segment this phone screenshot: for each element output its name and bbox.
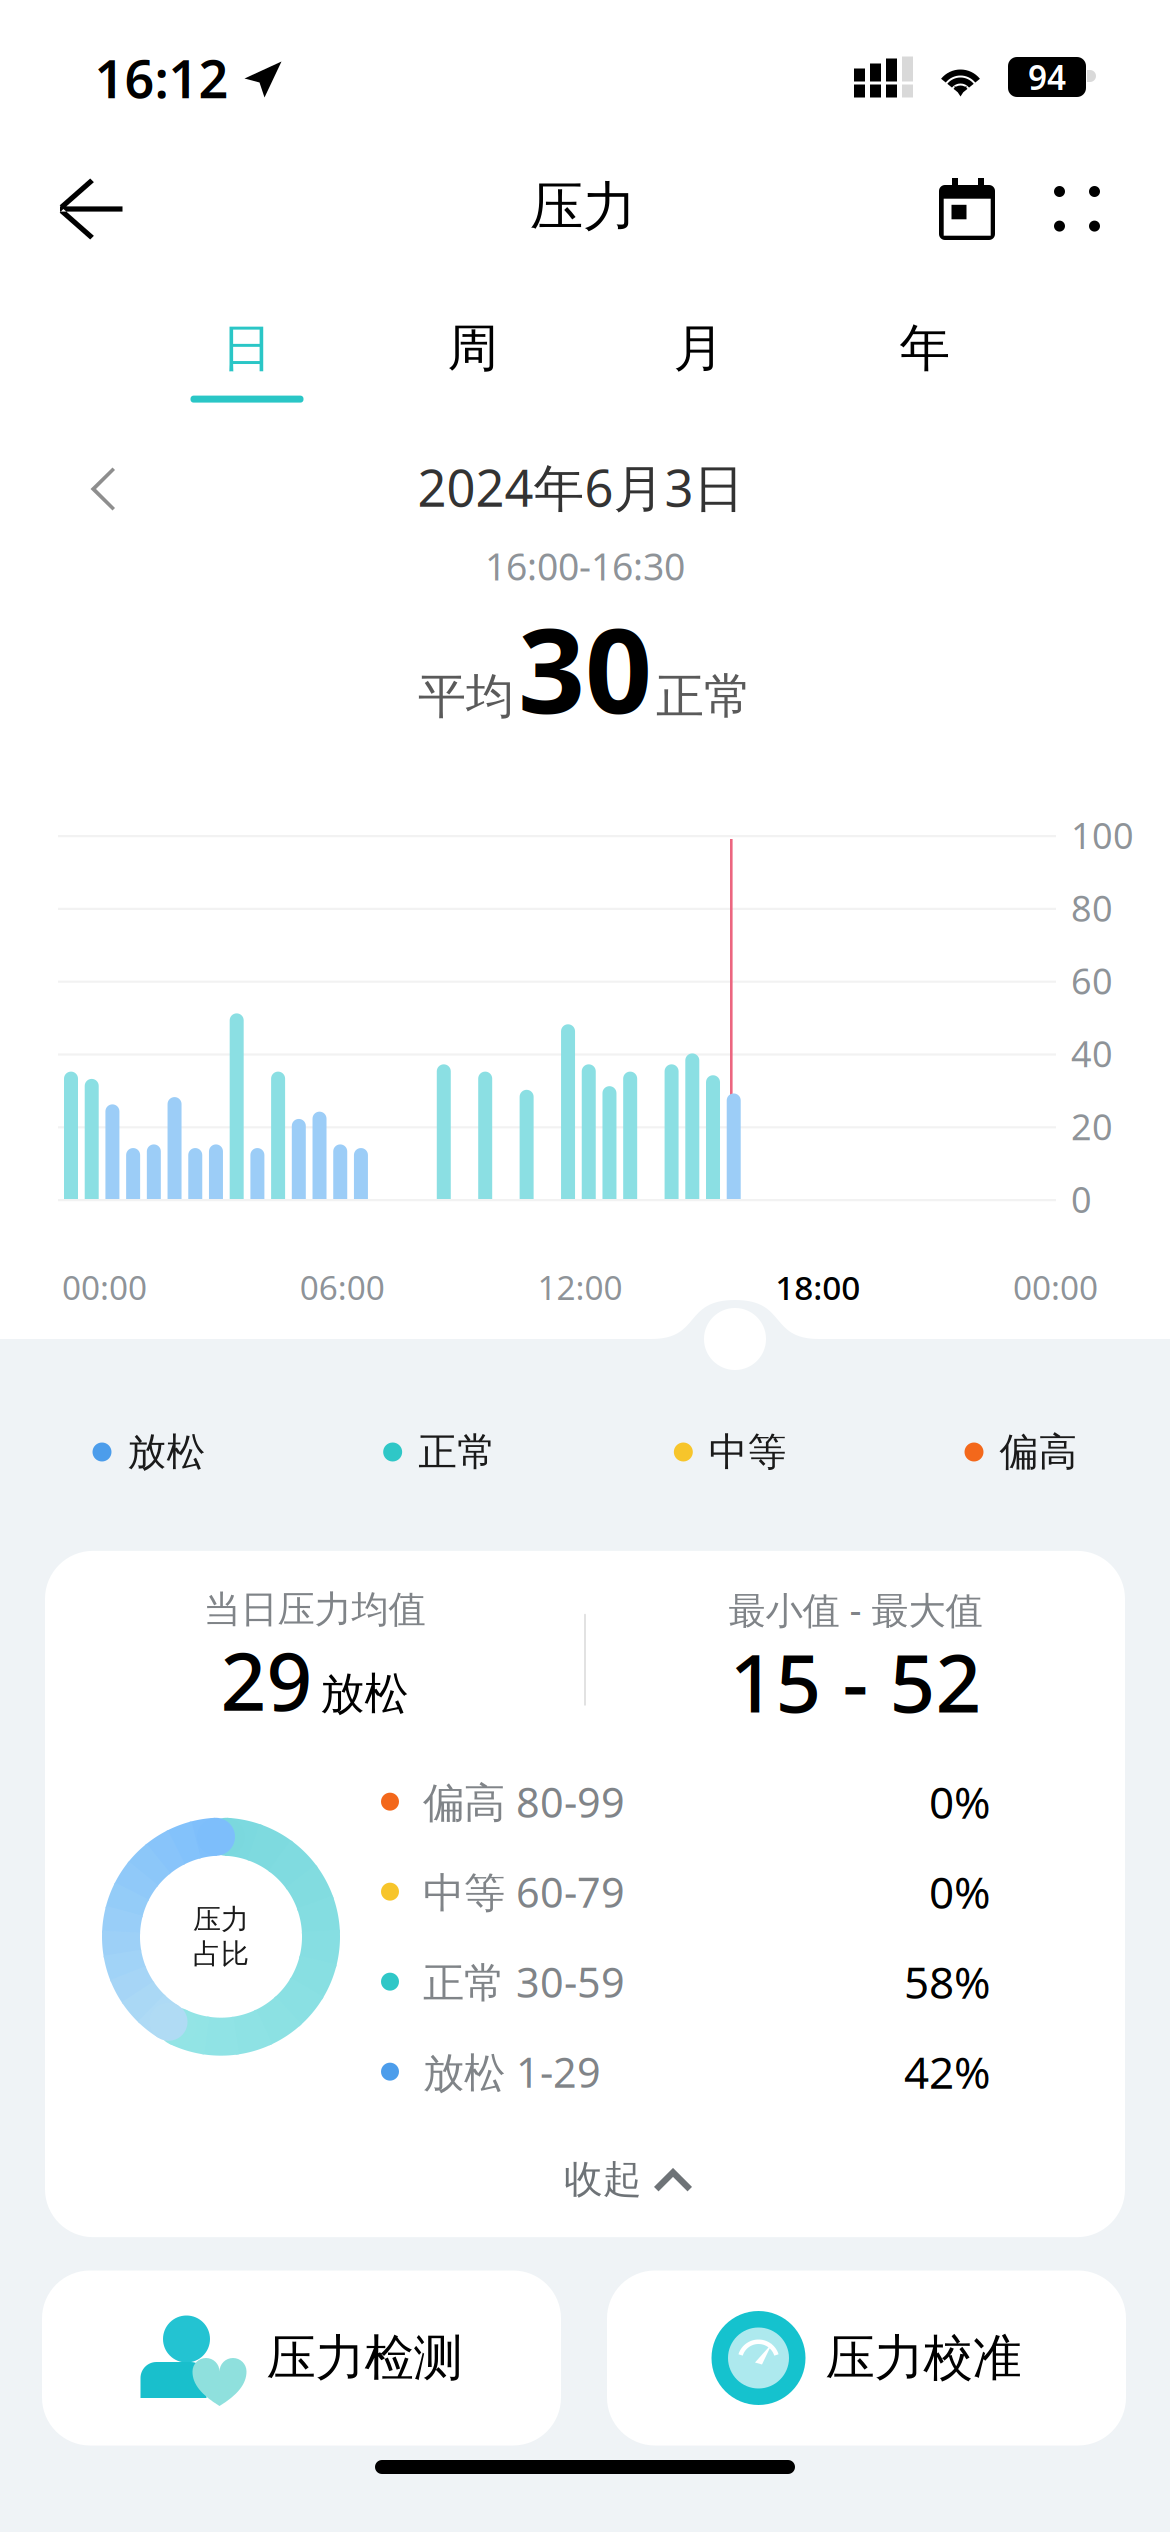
staticText: 0%	[929, 1772, 991, 1831]
staticText: 最小值 - 最大值	[728, 1585, 982, 1634]
staticText: 放松	[127, 1428, 205, 1476]
staticText: 压力	[193, 1902, 249, 1937]
staticText: 06:00	[300, 1265, 385, 1309]
staticText: 压力	[530, 174, 636, 240]
staticText: 0%	[929, 1862, 991, 1921]
button[interactable]: 周	[373, 307, 573, 413]
staticText: 压力校准	[825, 2328, 1021, 2388]
button[interactable]: 月	[599, 307, 799, 413]
staticText: 00:00	[1013, 1265, 1098, 1309]
staticText: 年	[899, 317, 950, 380]
staticText: 12:00	[537, 1265, 622, 1309]
button[interactable]: 压力校准	[607, 2270, 1126, 2445]
button[interactable]: Calendar	[913, 152, 1021, 266]
staticText: 平均	[418, 667, 514, 726]
staticText: 偏高	[999, 1428, 1077, 1476]
staticText: 正常	[656, 667, 752, 726]
button[interactable]: Previous day	[58, 441, 147, 536]
staticText: 15 - 52	[729, 1628, 981, 1735]
staticText: 正常 30-59	[423, 1954, 625, 2009]
staticText: 30	[518, 590, 652, 746]
staticText: 16:12	[94, 43, 228, 113]
staticText: 00:00	[62, 1265, 147, 1309]
staticText: 周	[447, 317, 498, 380]
staticText: 42%	[904, 2042, 991, 2101]
staticText: 放松 1-29	[423, 2044, 601, 2099]
staticText: 月	[673, 317, 724, 380]
staticText: 偏高 80-99	[423, 1774, 625, 1829]
button[interactable]: Back	[27, 148, 152, 269]
staticText: 60	[1071, 957, 1113, 1004]
staticText: 2024年6月3日	[417, 453, 744, 521]
staticText: 29	[220, 1627, 312, 1733]
staticText: 0	[1071, 1175, 1092, 1223]
staticText: 放松	[320, 1667, 408, 1721]
staticText: 80	[1071, 884, 1113, 932]
staticText: 58%	[904, 1952, 991, 2011]
button[interactable]: More options	[1028, 160, 1126, 258]
staticText: 100	[1071, 811, 1134, 859]
staticText: 压力检测	[266, 2328, 462, 2388]
staticText: 16:00-16:30	[485, 541, 685, 591]
button[interactable]: 收起	[45, 2117, 1125, 2237]
staticText: 正常	[418, 1428, 496, 1476]
staticText: 日	[221, 317, 272, 380]
button[interactable]: 压力检测	[42, 2270, 561, 2445]
staticText: 中等 60-79	[423, 1864, 625, 1919]
staticText: 收起	[564, 2156, 642, 2203]
button[interactable]: 年	[825, 307, 1025, 413]
staticText: 20	[1071, 1102, 1113, 1150]
staticText: 18:00	[775, 1265, 860, 1309]
staticText: 94	[1028, 55, 1066, 99]
staticText: 40	[1071, 1029, 1113, 1077]
staticText: 中等	[709, 1428, 787, 1476]
staticText: 当日压力均值	[203, 1587, 425, 1633]
button[interactable]: 日	[147, 307, 347, 413]
staticText: 占比	[193, 1937, 249, 1971]
